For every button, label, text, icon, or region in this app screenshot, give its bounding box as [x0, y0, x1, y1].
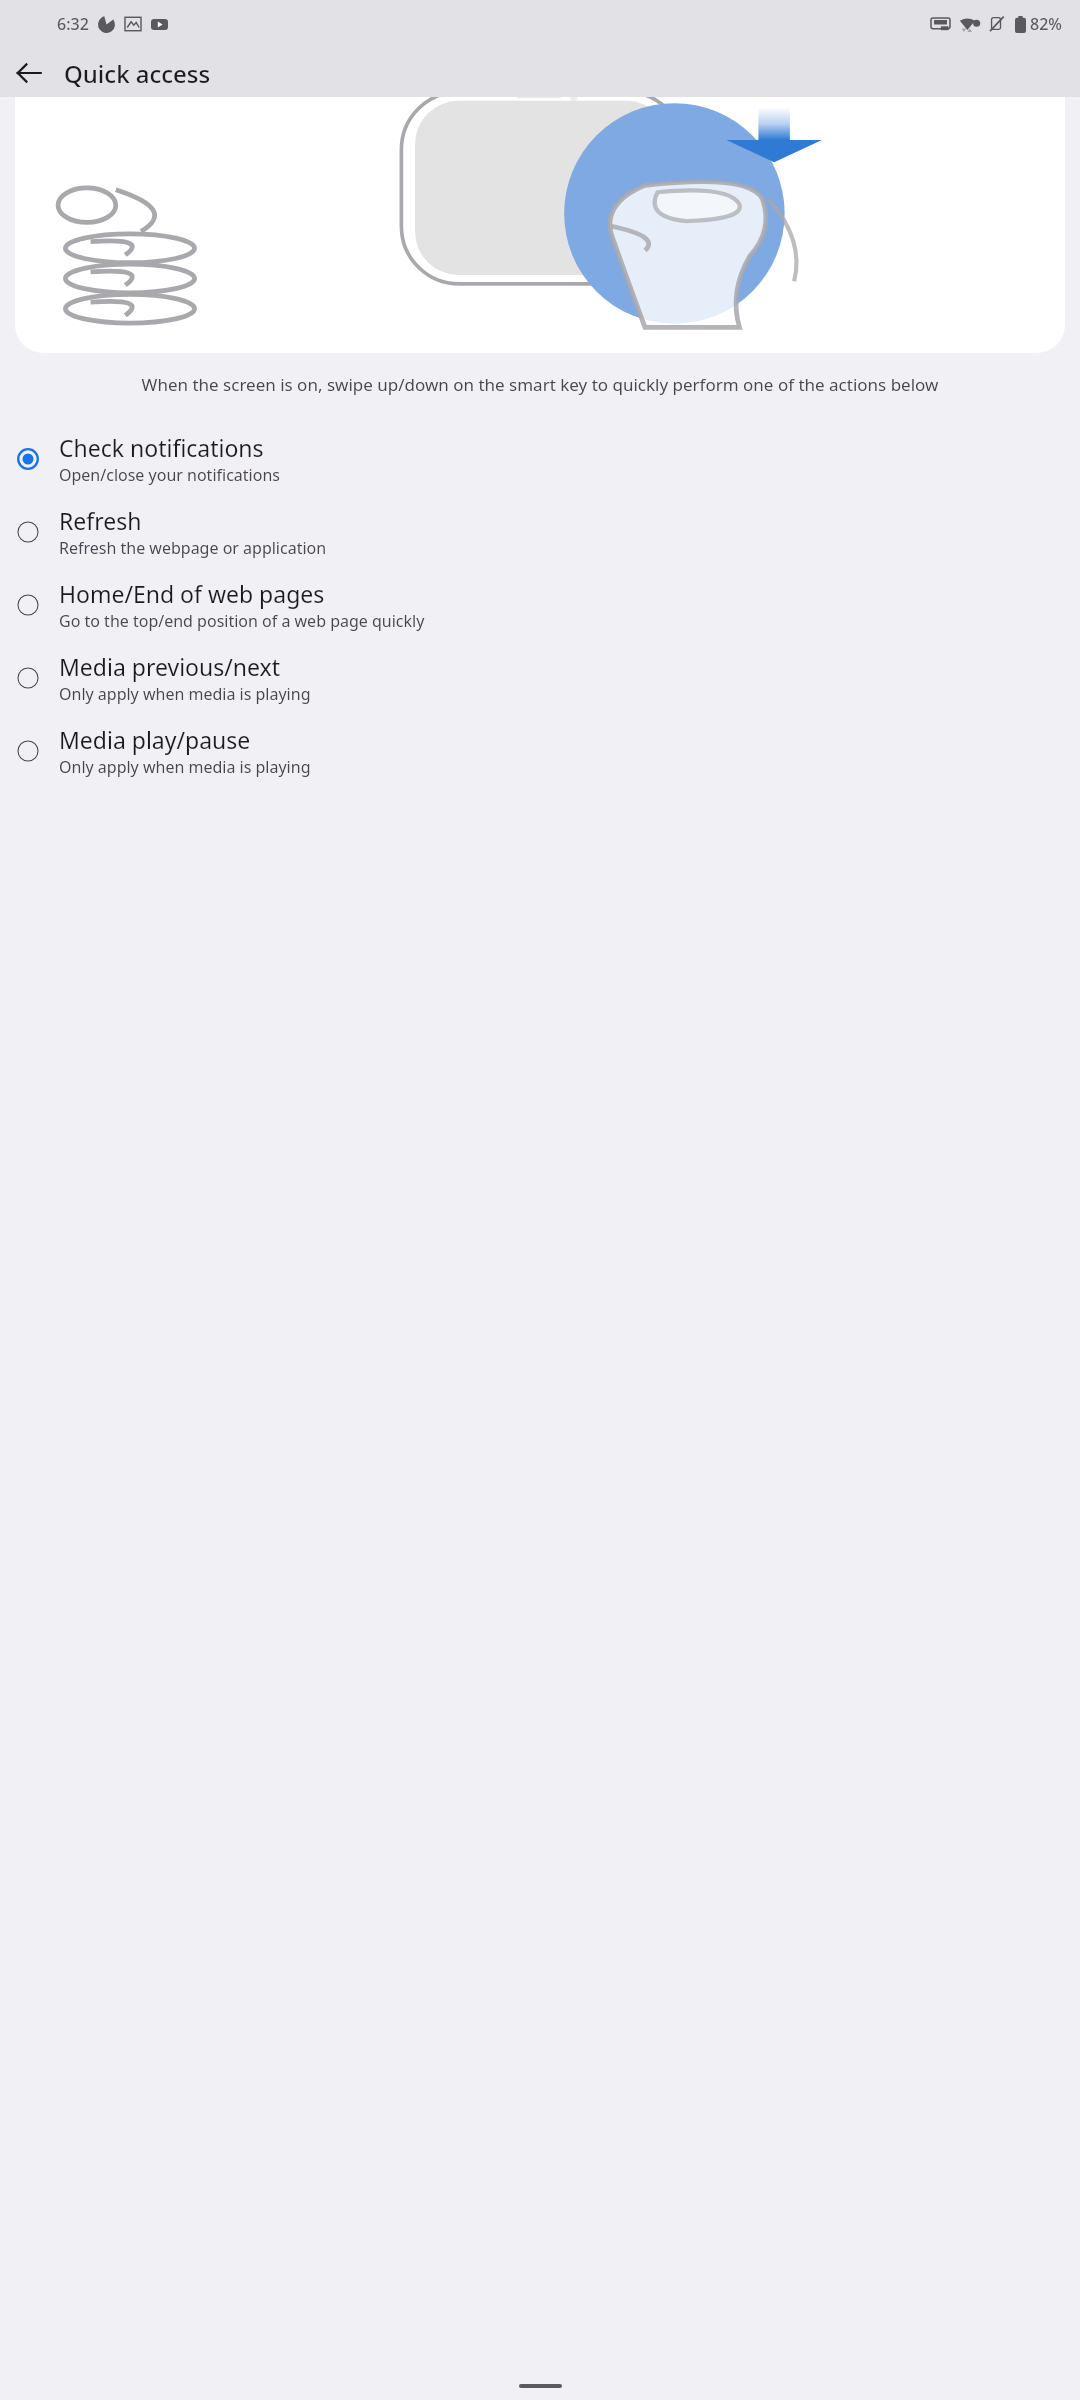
button[interactable]: Refresh — [0, 495, 1080, 568]
staticText: Media previous/next — [59, 651, 281, 682]
staticText: 6:32 — [57, 13, 89, 35]
staticText: 82% — [1030, 13, 1062, 35]
staticText: Refresh — [59, 505, 142, 536]
staticText: When the screen is on, swipe up/down on … — [13, 373, 1067, 396]
button[interactable]: Media play/pause — [0, 714, 1080, 787]
button[interactable]: Check notifications — [0, 422, 1080, 495]
button[interactable]: Back — [5, 49, 53, 97]
staticText: Only apply when media is playing — [59, 683, 311, 705]
staticText: Open/close your notifications — [59, 464, 280, 486]
staticText: Only apply when media is playing — [59, 756, 311, 778]
staticText: Refresh the webpage or application — [59, 537, 327, 559]
staticText: Check notifications — [59, 432, 264, 463]
staticText: Go to the top/end position of a web page… — [59, 610, 425, 632]
staticText: Media play/pause — [59, 724, 251, 755]
staticText: Home/End of web pages — [59, 578, 325, 609]
button[interactable]: Home/End of web pages — [0, 568, 1080, 641]
button[interactable]: Media previous/next — [0, 641, 1080, 714]
staticText: Quick access — [64, 57, 211, 90]
